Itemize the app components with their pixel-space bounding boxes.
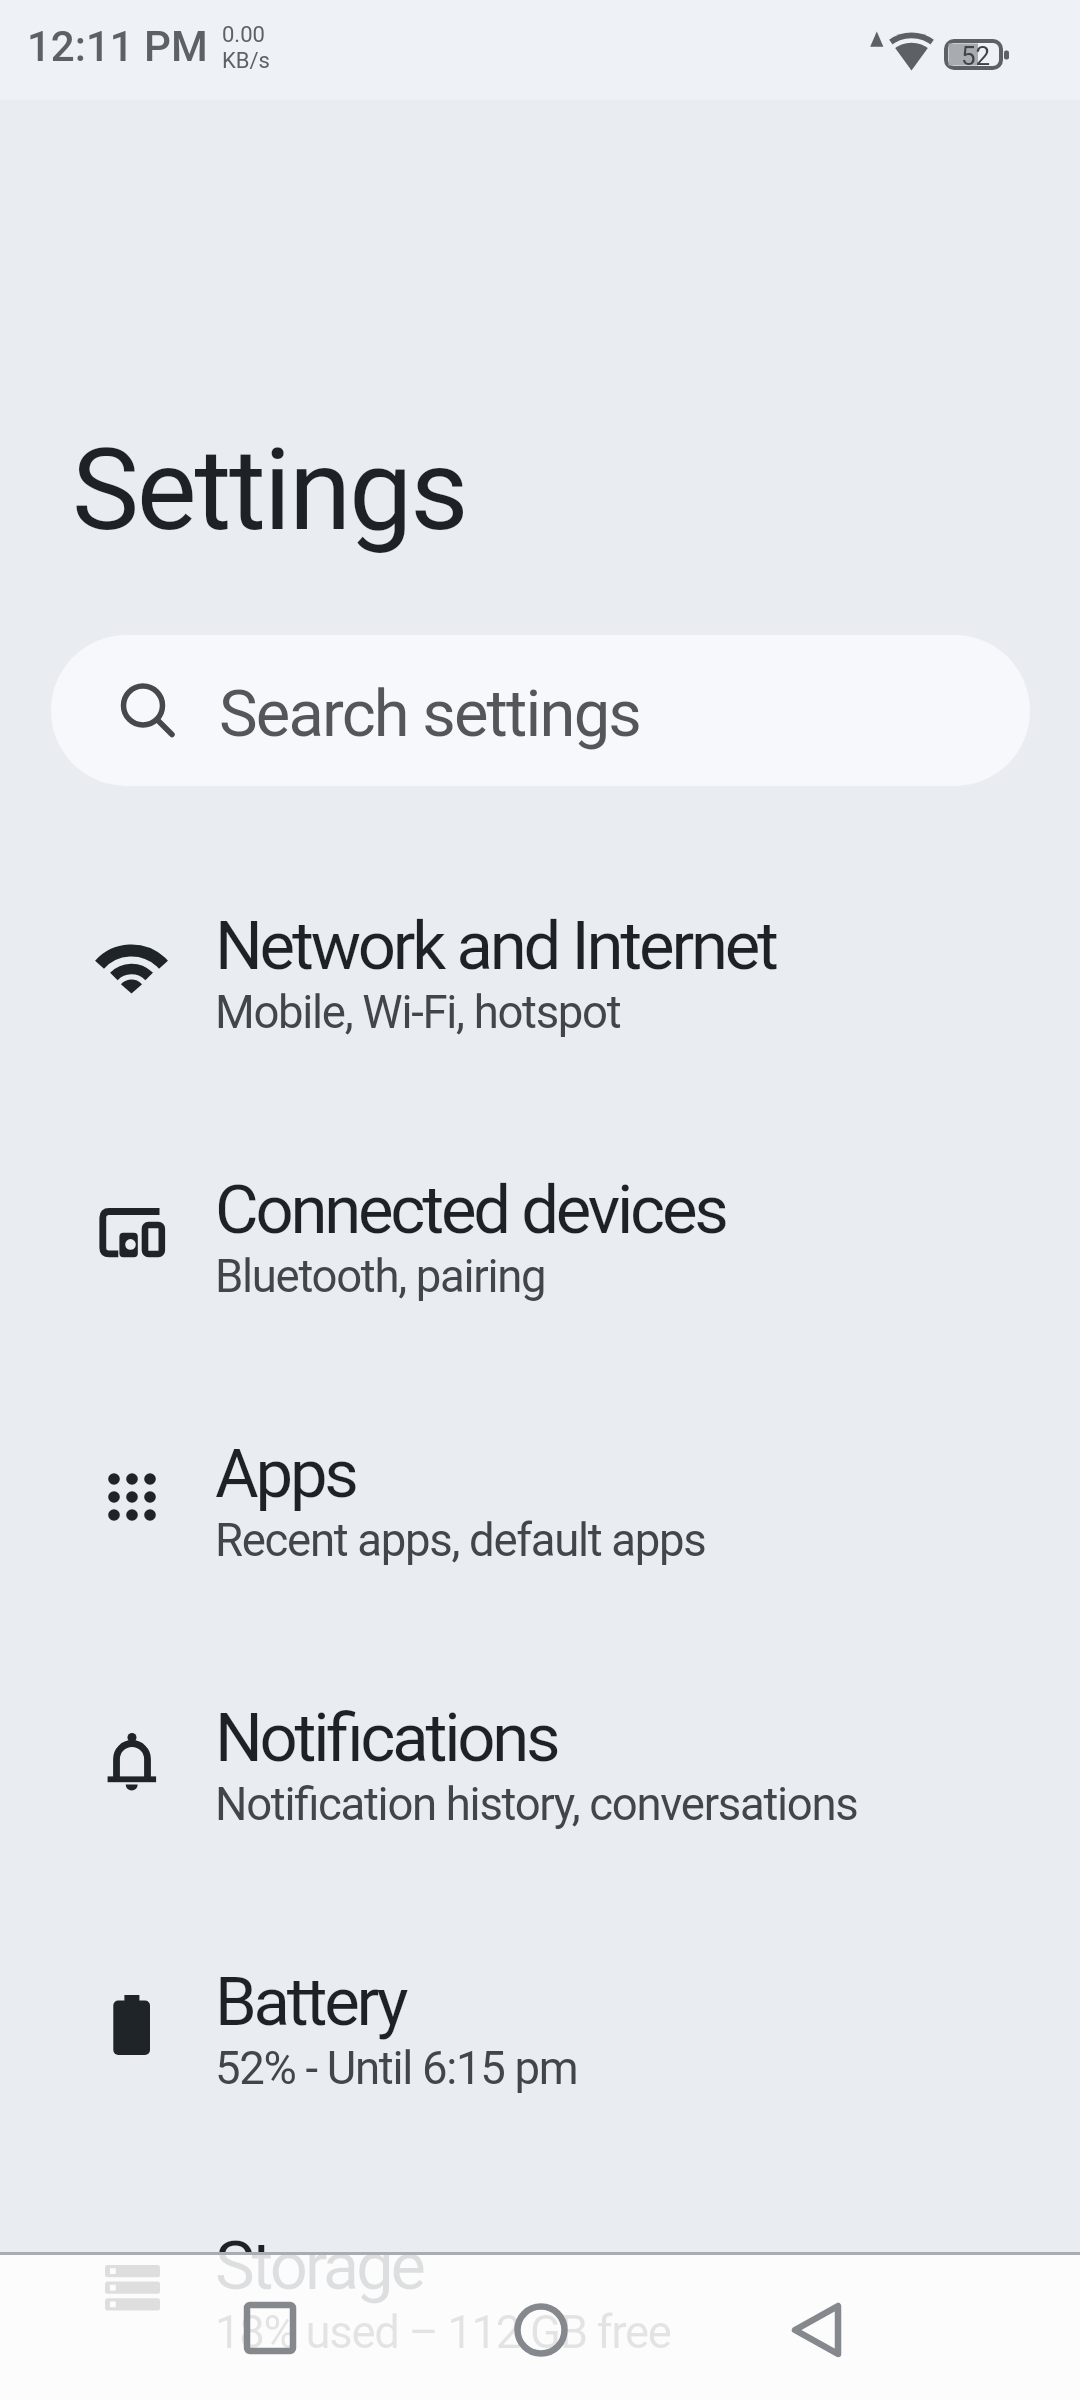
button[interactable]: Network and Internet (0, 841, 1080, 1105)
button[interactable]: Connected devices (0, 1105, 1080, 1369)
button[interactable] (756, 2270, 876, 2390)
button[interactable]: Apps (0, 1369, 1080, 1633)
button[interactable]: Search settings (51, 635, 1030, 786)
staticText: Apps (215, 1435, 356, 1514)
button[interactable] (481, 2270, 601, 2390)
staticText: 18% used – 112 GB free (215, 2306, 671, 2359)
button[interactable]: Battery (0, 1897, 1080, 2161)
staticText: 52 (961, 41, 991, 71)
button[interactable] (210, 2268, 330, 2388)
button[interactable]: Storage (0, 2161, 1080, 2400)
staticText: Search settings (219, 676, 641, 752)
staticText: Notifications (215, 1699, 558, 1778)
staticText: Settings (72, 424, 467, 556)
button[interactable]: Notifications (0, 1633, 1080, 1897)
staticText: Notification history, conversations (215, 1778, 858, 1831)
staticText: 0.00 (222, 22, 265, 48)
staticText: Network and Internet (215, 907, 776, 986)
staticText: 52% - Until 6:15 pm (215, 2042, 578, 2095)
staticText: 12:11 PM (27, 22, 208, 71)
staticText: Connected devices (215, 1171, 726, 1250)
staticText: Recent apps, default apps (215, 1514, 706, 1567)
staticText: Bluetooth, pairing (215, 1250, 546, 1303)
staticText: KB/s (222, 48, 270, 74)
staticText: Battery (215, 1963, 406, 2042)
staticText: Storage (215, 2227, 423, 2306)
staticText: Mobile, Wi-Fi, hotspot (215, 986, 621, 1039)
